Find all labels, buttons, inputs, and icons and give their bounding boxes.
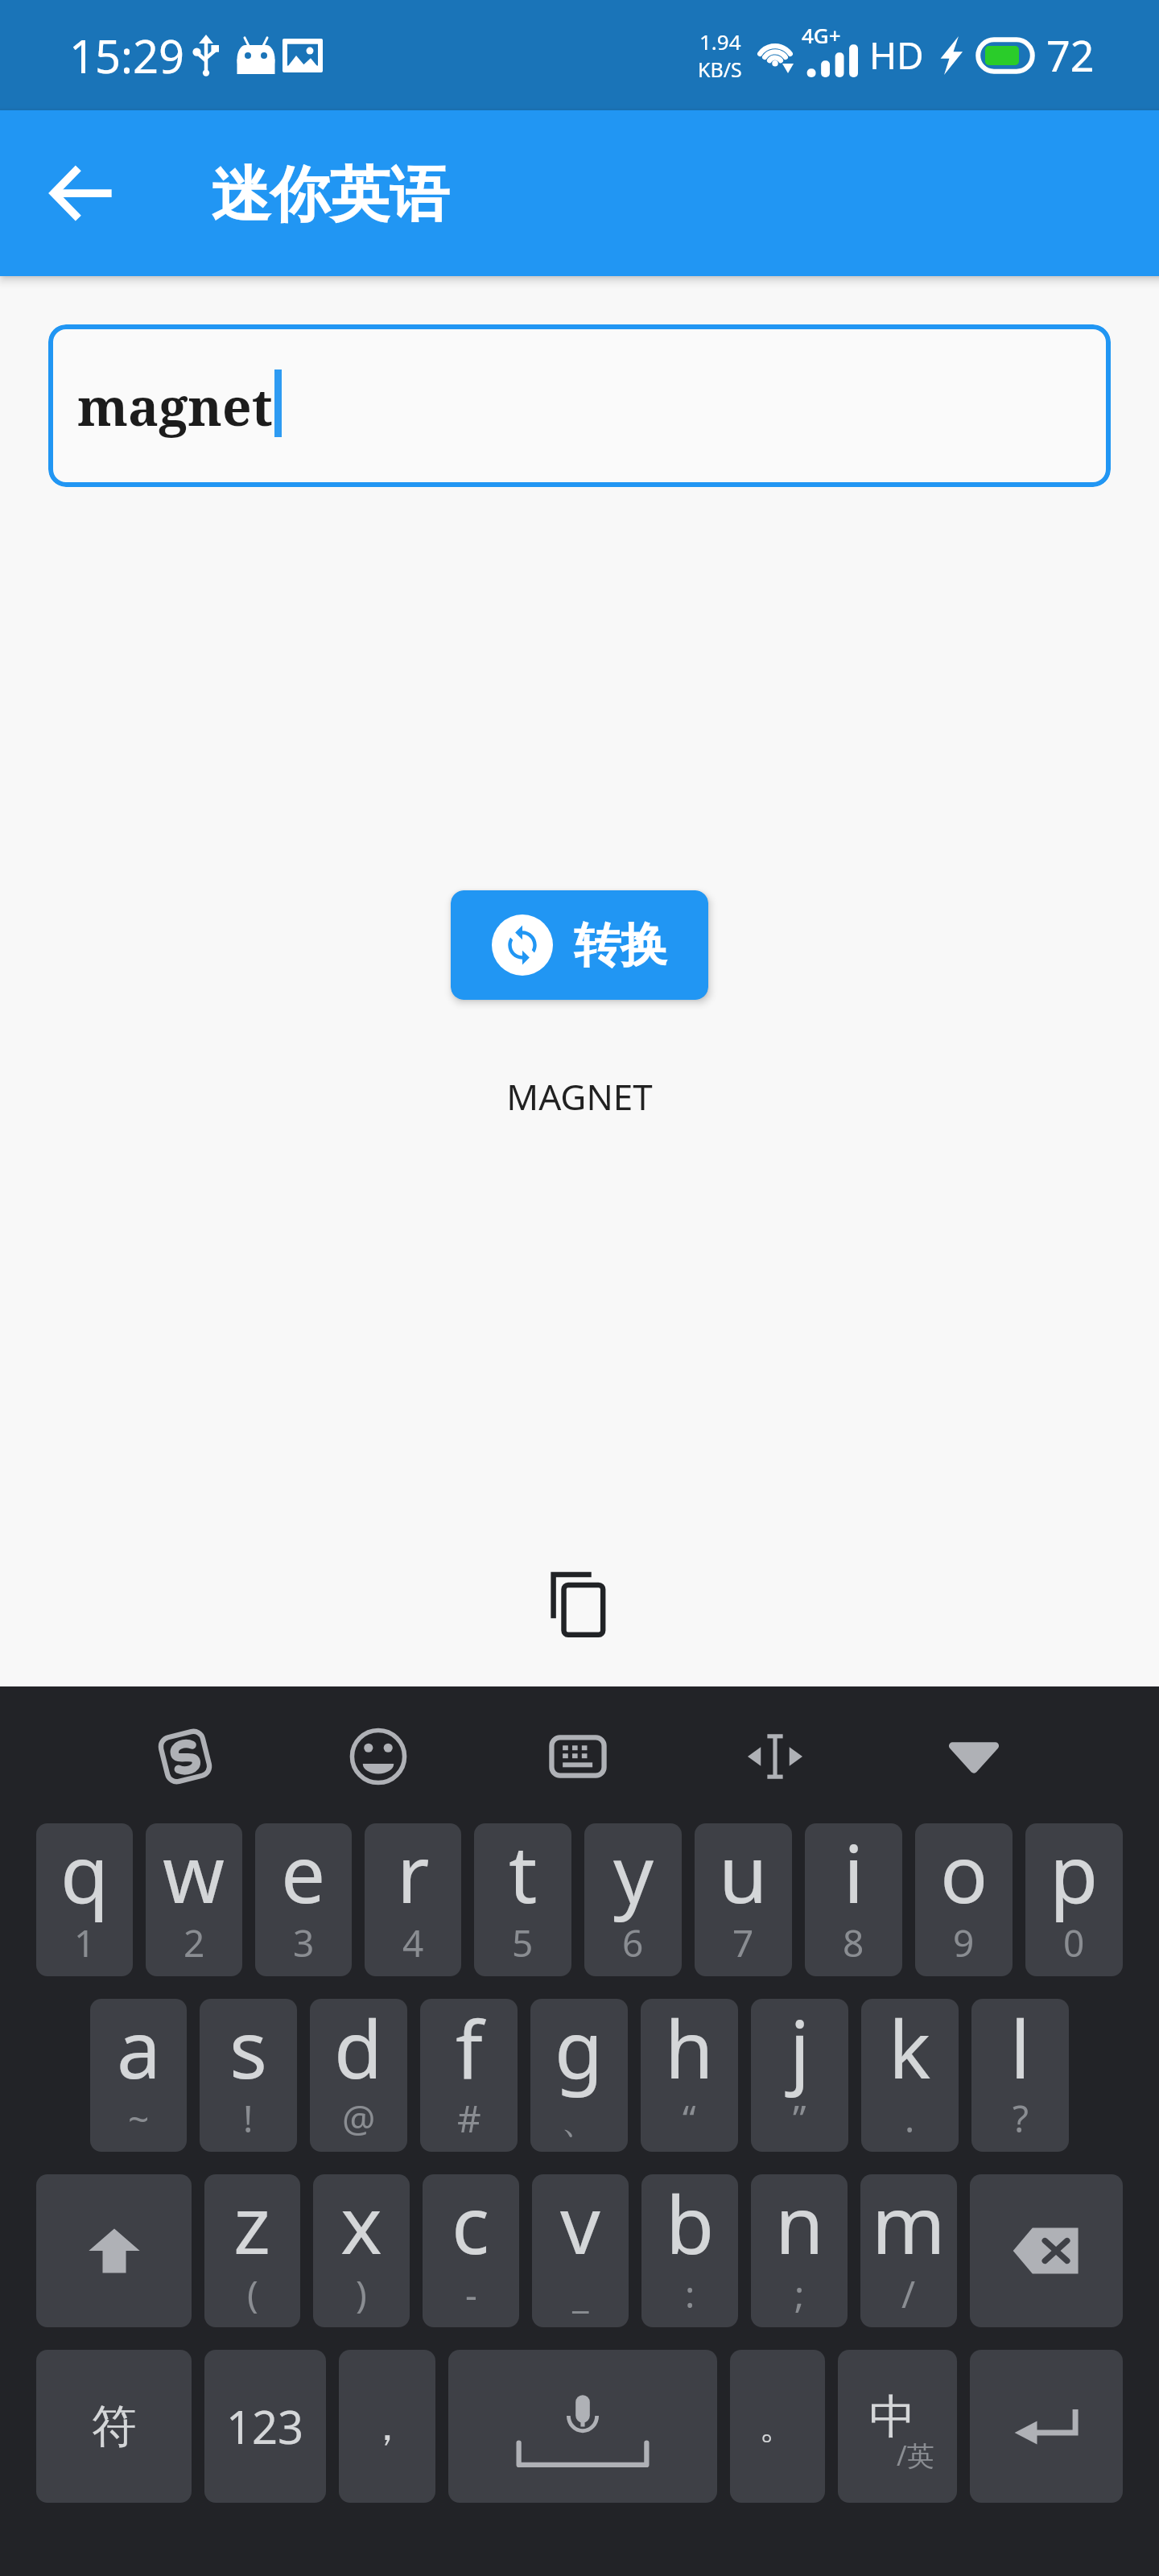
button[interactable]: Move cursor [728, 1710, 822, 1803]
staticText: 。 [759, 2403, 796, 2450]
button[interactable]: y [584, 1823, 682, 1976]
staticText: i [843, 1823, 864, 1926]
staticText: l [1010, 1999, 1031, 2101]
staticText: z [233, 2174, 271, 2277]
staticText: t [509, 1823, 538, 1926]
staticText: magnet [77, 371, 273, 441]
button[interactable]: f [420, 1999, 518, 2152]
button[interactable]: e [255, 1823, 352, 1976]
button[interactable]: j [751, 1999, 848, 2152]
button[interactable]: Keyboard layout [531, 1710, 625, 1803]
staticText: 6 [622, 1918, 644, 1968]
staticText: 9 [953, 1918, 975, 1968]
staticText: ; [794, 2268, 805, 2319]
button[interactable]: Enter [970, 2350, 1123, 2503]
staticText: ) [356, 2268, 367, 2319]
button[interactable]: ， [339, 2350, 435, 2503]
staticText: 1.94 [699, 27, 741, 56]
button[interactable]: u [695, 1823, 792, 1976]
staticText: . [905, 2093, 915, 2144]
button[interactable]: m [860, 2174, 957, 2327]
button[interactable]: r [365, 1823, 461, 1976]
button[interactable]: g [530, 1999, 628, 2152]
staticText: r [397, 1823, 430, 1926]
button[interactable]: 中 [838, 2350, 957, 2503]
staticText: ( [247, 2268, 258, 2319]
button[interactable]: Sogou input [138, 1710, 232, 1803]
staticText: 72 [1046, 27, 1095, 84]
staticText: KB/S [698, 56, 742, 83]
button[interactable]: z [204, 2174, 300, 2327]
button[interactable]: 符 [36, 2350, 192, 2503]
staticText: a [117, 1999, 161, 2101]
button[interactable]: t [474, 1823, 571, 1976]
staticText: ~ [128, 2093, 150, 2144]
button[interactable]: l [971, 1999, 1069, 2152]
staticText: 5 [512, 1918, 534, 1968]
button[interactable]: Backspace [970, 2174, 1123, 2327]
staticText: “ [683, 2093, 696, 2144]
staticText: _ [572, 2268, 589, 2319]
staticText: # [457, 2093, 481, 2144]
button[interactable]: Hide keyboard [927, 1710, 1021, 1803]
button[interactable]: n [751, 2174, 848, 2327]
button[interactable]: b [641, 2174, 738, 2327]
button[interactable]: Back [42, 153, 122, 233]
button[interactable]: x [313, 2174, 410, 2327]
button[interactable]: Space [448, 2350, 717, 2503]
staticText: 123 [226, 2396, 304, 2457]
button[interactable]: k [861, 1999, 959, 2152]
button[interactable]: c [423, 2174, 519, 2327]
button[interactable]: Copy [534, 1560, 622, 1649]
staticText: x [340, 2174, 382, 2277]
staticText: s [229, 1999, 267, 2101]
staticText: c [452, 2174, 490, 2277]
button[interactable]: 转换 [451, 890, 708, 1000]
staticText: u [719, 1823, 768, 1926]
button[interactable]: v [532, 2174, 629, 2327]
staticText: 0 [1063, 1918, 1085, 1968]
button[interactable]: 。 [730, 2350, 825, 2503]
staticText: j [790, 1999, 810, 2101]
staticText: v [560, 2174, 600, 2277]
staticText: e [281, 1823, 326, 1926]
staticText: 7 [732, 1918, 754, 1968]
staticText: q [60, 1823, 109, 1926]
button[interactable]: Emoji [332, 1710, 425, 1803]
staticText: k [889, 1999, 931, 2101]
button[interactable]: q [36, 1823, 133, 1976]
staticText: 8 [843, 1918, 864, 1968]
button[interactable]: a [90, 1999, 187, 2152]
staticText: ? [1013, 2093, 1029, 2144]
staticText: o [940, 1823, 988, 1926]
staticText: n [775, 2174, 824, 2277]
button[interactable]: Shift [36, 2174, 192, 2327]
staticText: 中 [869, 2388, 916, 2446]
button[interactable]: p [1025, 1823, 1123, 1976]
staticText: @ [342, 2093, 376, 2144]
staticText: h [665, 1999, 714, 2101]
staticText: 4G+ [802, 21, 841, 49]
staticText: f [456, 1999, 483, 2101]
button[interactable]: i [805, 1823, 902, 1976]
staticText: MAGNET [0, 1072, 1159, 1121]
staticText: 3 [293, 1918, 315, 1968]
staticText: HD [869, 30, 924, 80]
staticText: 4 [402, 1918, 424, 1968]
staticText: - [465, 2268, 477, 2319]
button[interactable]: w [146, 1823, 242, 1976]
button[interactable]: o [915, 1823, 1013, 1976]
button[interactable]: d [310, 1999, 407, 2152]
staticText: 1 [74, 1918, 96, 1968]
button[interactable]: s [200, 1999, 297, 2152]
staticText: 迷你英语 [211, 158, 449, 233]
staticText: 2 [184, 1918, 205, 1968]
staticText: m [872, 2174, 946, 2277]
staticText: g [555, 1999, 604, 2101]
staticText: ” [793, 2093, 806, 2144]
button[interactable]: magnet [48, 324, 1111, 487]
staticText: 、 [561, 2097, 598, 2144]
staticText: w [163, 1823, 225, 1926]
button[interactable]: h [641, 1999, 738, 2152]
button[interactable]: 123 [204, 2350, 326, 2503]
